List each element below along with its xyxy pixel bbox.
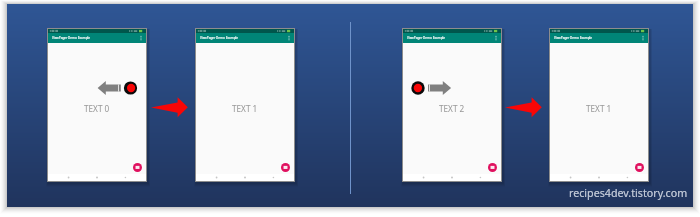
button[interactable]: Send [635,163,644,172]
staticText: ViewPager Demo Example [200,36,239,40]
staticText: TEXT 2 [439,103,465,114]
button[interactable]: More options [286,35,292,41]
button[interactable]: Send [488,163,497,172]
staticText: TEXT 1 [232,103,258,114]
button[interactable]: Send [133,163,142,172]
button[interactable]: More options [640,35,646,41]
staticText: ViewPager Demo Example [52,36,91,40]
staticText: ViewPager Demo Example [554,36,593,40]
button[interactable]: More options [138,35,144,41]
staticText: TEXT 0 [84,103,110,114]
staticText: ViewPager Demo Example [407,36,446,40]
button[interactable]: More options [493,35,499,41]
button[interactable]: Send [281,163,290,172]
staticText: recipes4dev.tistory.com [569,186,688,201]
staticText: TEXT 1 [586,103,612,114]
